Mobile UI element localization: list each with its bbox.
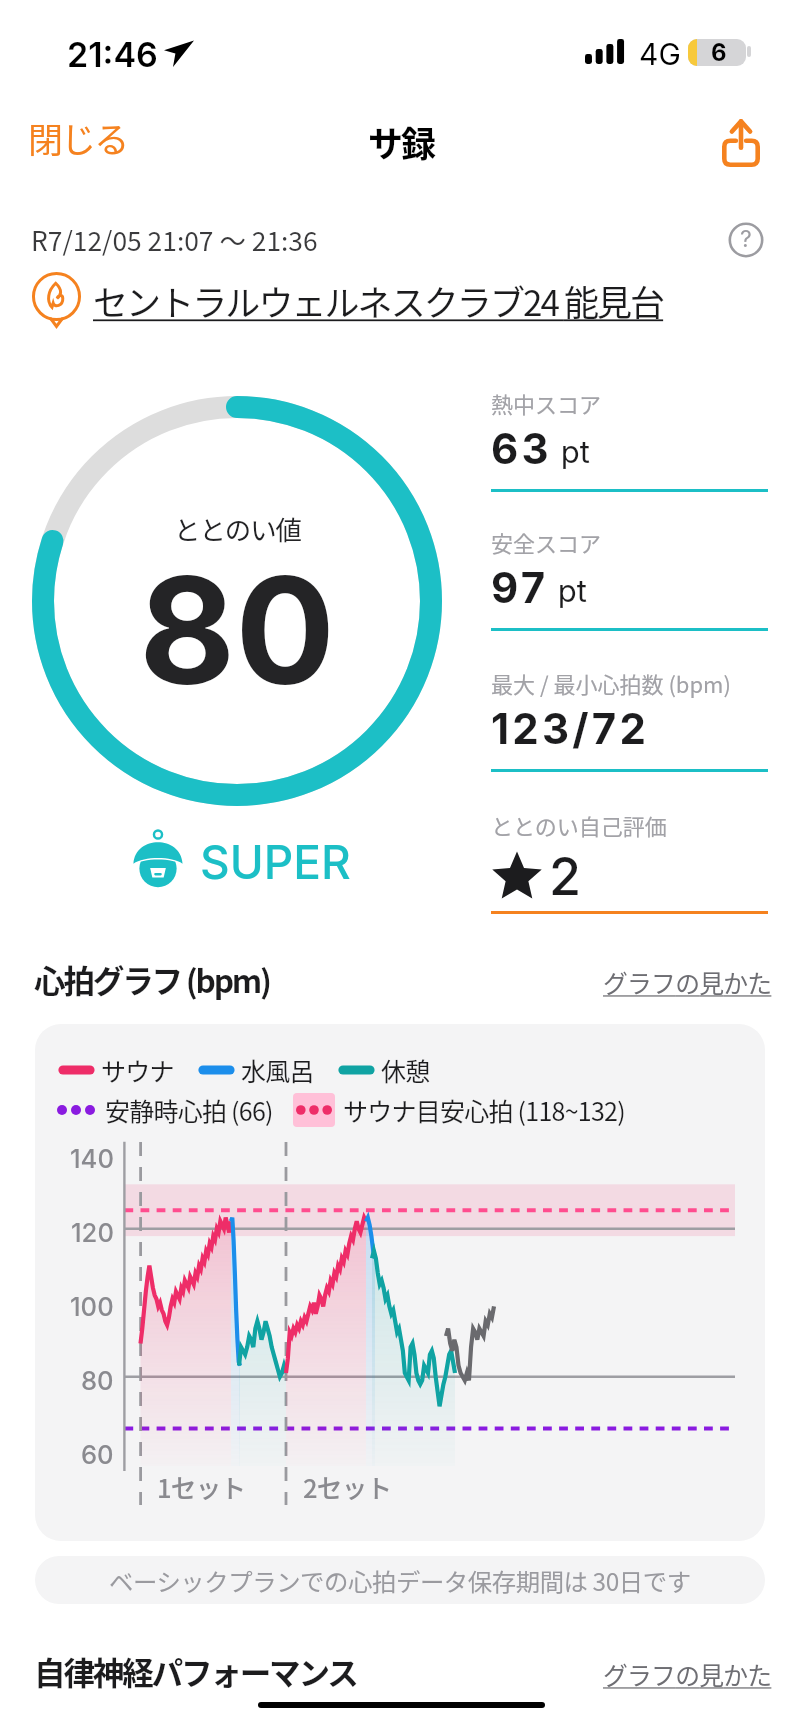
staticText: 1セット (157, 1468, 246, 1505)
button[interactable]: グラフの見かた (603, 1656, 772, 1692)
staticText: 21:46 (67, 34, 158, 75)
staticText: ? (740, 225, 752, 253)
staticText: ベーシックプランでの心拍データ保存期間は 30日です (109, 1563, 691, 1598)
staticText: pt (549, 572, 587, 610)
staticText: ととのい自己評価 (491, 809, 667, 841)
staticText: 4G (639, 36, 681, 72)
staticText: 心拍グラフ (bpm) (34, 956, 270, 1002)
staticText: 123/72 (491, 703, 650, 754)
staticText: 安全スコア (491, 526, 602, 558)
staticText: R7/12/05 21:07 〜 21:36 (31, 220, 318, 258)
staticText: グラフの見かた (603, 1656, 772, 1692)
staticText: 97 (491, 562, 549, 613)
staticText: 閉じる (28, 112, 128, 163)
button[interactable]: 閉じる (12, 100, 144, 175)
staticText: 63 (491, 423, 552, 474)
staticText: グラフの見かた (603, 964, 772, 1000)
staticText: 2 (549, 845, 582, 908)
staticText: 休憩 (381, 1052, 430, 1088)
staticText: 60 (81, 1439, 114, 1470)
button[interactable] (491, 807, 768, 913)
staticText: SUPER (200, 834, 351, 890)
staticText: 自律神経パフォーマンス (34, 1648, 357, 1694)
staticText: 6 (711, 39, 727, 65)
staticText: サウナ目安心拍 (118~132) (343, 1092, 625, 1128)
staticText: 水風呂 (241, 1052, 314, 1088)
staticText: 2セット (303, 1468, 392, 1505)
staticText: 80 (81, 1365, 114, 1396)
button[interactable]: セントラルウェルネスクラブ24 能見台 (32, 272, 664, 328)
button[interactable]: グラフの見かた (603, 964, 772, 1000)
staticText: ととのい値 (174, 509, 302, 547)
staticText: 120 (71, 1217, 114, 1248)
staticText: サウナ (101, 1052, 174, 1088)
staticText: 安静時心拍 (66) (105, 1092, 273, 1128)
staticText: 80 (139, 541, 336, 720)
staticText: サ録 (368, 116, 435, 167)
staticText: 140 (70, 1143, 114, 1174)
button[interactable] (491, 665, 768, 771)
staticText: 熱中スコア (491, 387, 602, 419)
staticText: 最大 / 最小心拍数 (bpm) (491, 667, 731, 699)
staticText: セントラルウェルネスクラブ24 能見台 (93, 275, 664, 326)
button[interactable] (491, 385, 768, 491)
staticText: pt (552, 433, 590, 471)
button[interactable] (491, 524, 768, 630)
button[interactable]: Help (729, 223, 763, 257)
button[interactable]: Share (706, 111, 776, 175)
staticText: 100 (70, 1291, 114, 1322)
